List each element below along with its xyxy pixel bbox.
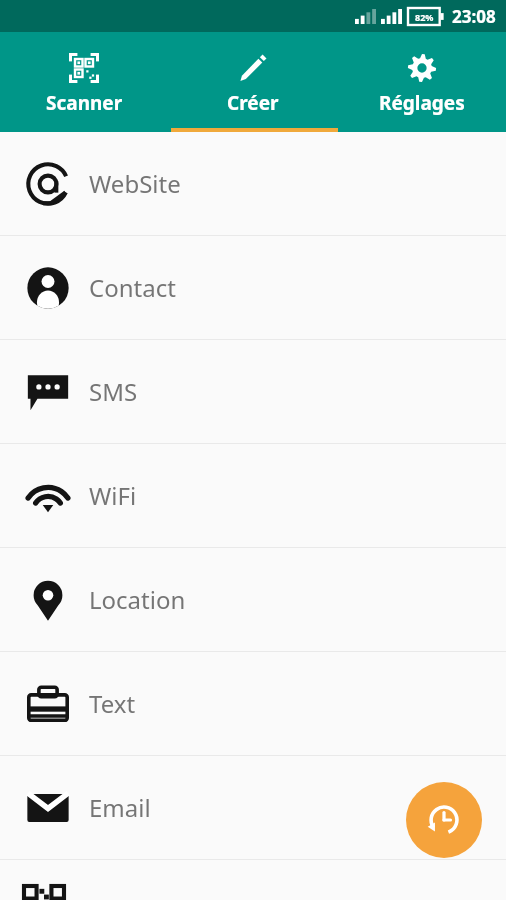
staticText: Réglages — [379, 90, 465, 116]
button[interactable]: SMS — [0, 340, 506, 443]
button[interactable]: Scanner — [0, 32, 168, 132]
button[interactable]: Contact — [0, 236, 506, 339]
button[interactable]: Text — [0, 652, 506, 755]
button[interactable]: Historique — [406, 782, 482, 858]
staticText: WebSite — [89, 167, 181, 200]
button[interactable]: Location — [0, 548, 506, 651]
staticText: Contact — [89, 271, 176, 304]
button[interactable]: Réglages — [337, 32, 506, 132]
staticText: Text — [89, 687, 136, 720]
staticText: WiFi — [89, 479, 137, 512]
staticText: Créer — [227, 90, 279, 116]
button[interactable]: Créer — [168, 32, 337, 132]
staticText: SMS — [89, 375, 138, 408]
button[interactable]: WiFi — [0, 444, 506, 547]
staticText: Scanner — [46, 90, 123, 116]
staticText: Location — [89, 583, 186, 616]
staticText: Email — [89, 791, 151, 824]
button[interactable] — [0, 860, 506, 900]
button[interactable]: WebSite — [0, 132, 506, 235]
staticText: 23:08 — [452, 5, 496, 28]
button[interactable]: Email — [0, 756, 506, 859]
staticText: 82% — [415, 11, 434, 23]
